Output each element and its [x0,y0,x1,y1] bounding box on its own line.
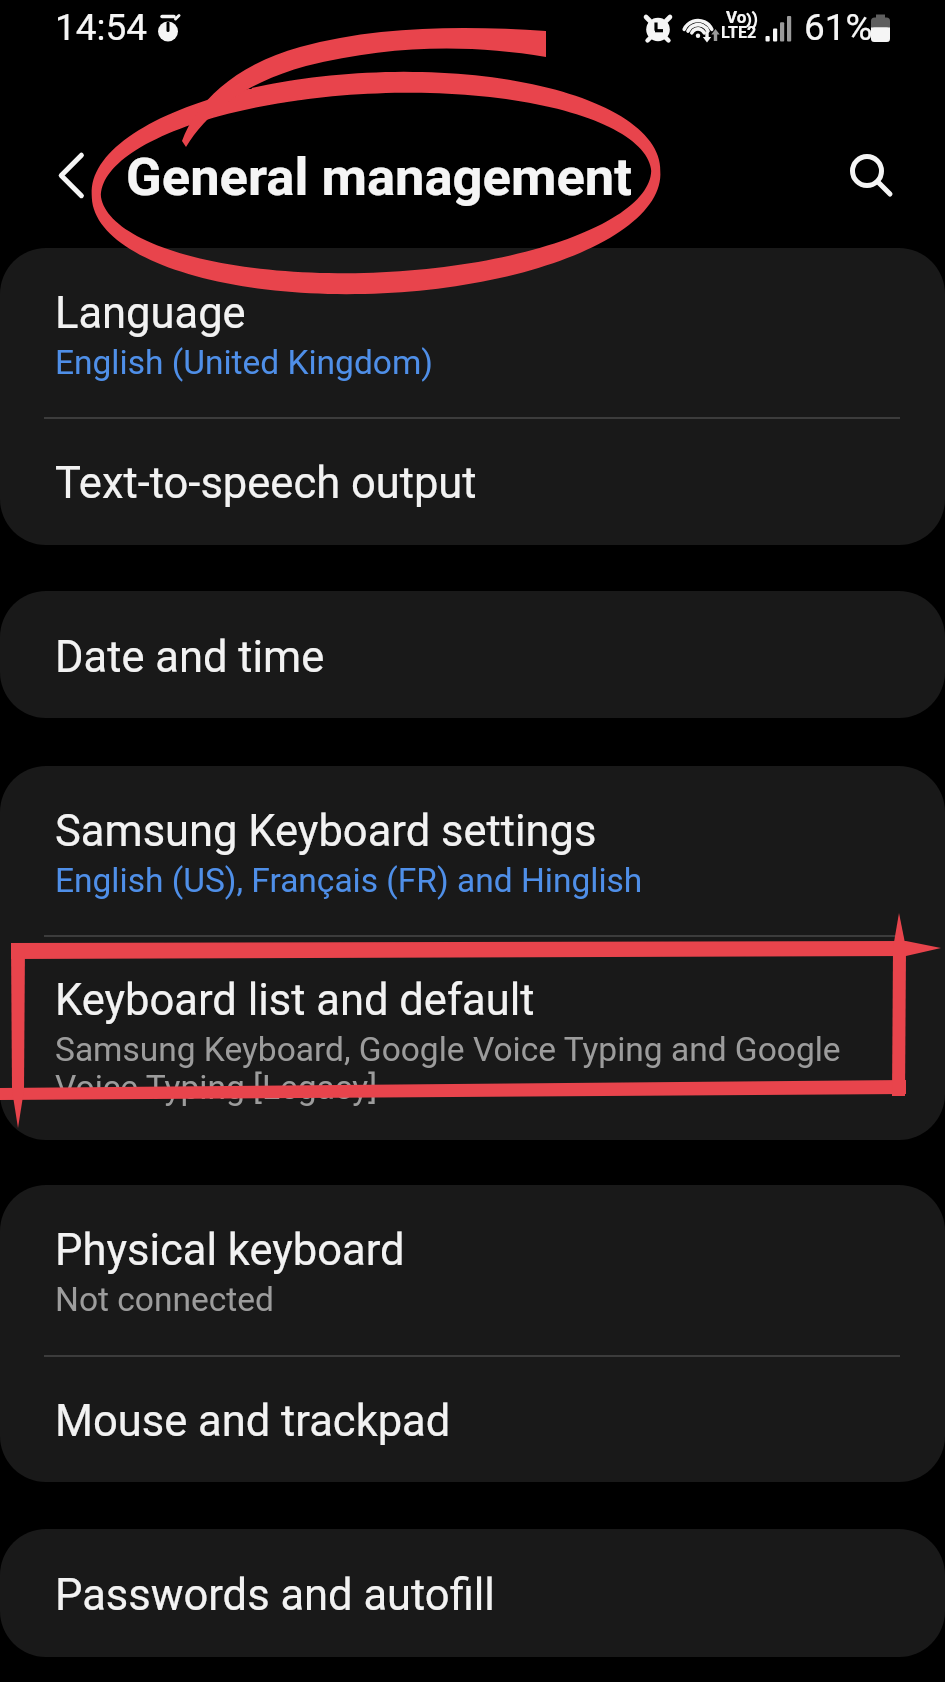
staticText: 61% [804,6,873,49]
staticText: Language [55,288,246,339]
button[interactable]: Mouse and trackpad [0,1355,945,1482]
button[interactable]: Physical keyboard [0,1185,945,1355]
button[interactable]: Date and time [0,591,945,718]
staticText: Keyboard list and default [55,975,535,1026]
button[interactable]: Language [0,248,945,417]
staticText: Samsung Keyboard, Google Voice Typing an… [55,1030,855,1107]
staticText: Samsung Keyboard settings [55,806,597,857]
staticText: Passwords and autofill [55,1570,495,1621]
staticText: Mouse and trackpad [55,1396,451,1447]
staticText: LTE2 [721,23,757,42]
button[interactable]: Search [819,123,915,219]
staticText: 14:54 [55,6,148,49]
button[interactable]: Passwords and autofill [0,1529,945,1657]
staticText: Date and time [55,632,325,683]
staticText: Physical keyboard [55,1225,405,1276]
staticText: Text-to-speech output [55,458,477,509]
button[interactable]: Keyboard list and default [0,935,945,1140]
staticText: English (US), Français (FR) and Hinglish [55,861,855,900]
staticText: General management [126,146,632,208]
staticText: Not connected [55,1280,855,1319]
staticText: Vo [726,7,747,27]
button[interactable]: Navigate up [26,131,114,219]
button[interactable]: Text-to-speech output [0,417,945,545]
button[interactable]: Samsung Keyboard settings [0,766,945,935]
staticText: English (United Kingdom) [55,343,855,382]
